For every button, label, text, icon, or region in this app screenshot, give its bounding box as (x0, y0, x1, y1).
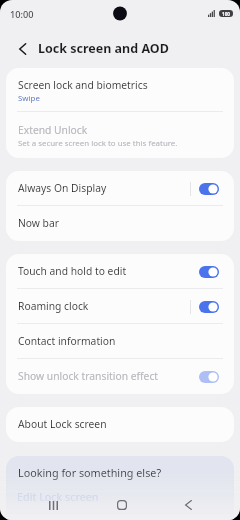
staticText: Looking for something else? (18, 465, 162, 480)
staticText: Roaming clock (18, 299, 89, 313)
staticText: Show unlock transition effect (18, 369, 159, 383)
staticText: Set a secure screen lock to use this fea… (18, 138, 178, 149)
staticText: Touch and hold to edit (18, 264, 127, 278)
button[interactable]: Now bar (6, 206, 234, 241)
staticText: Always On Display (18, 181, 107, 195)
staticText: Extend Unlock (18, 123, 88, 137)
button[interactable]: Touch and hold to edit (6, 254, 190, 289)
button[interactable]: Back (176, 493, 200, 517)
staticText: 100 (222, 11, 230, 17)
button[interactable]: Home (110, 493, 134, 517)
staticText: 10:00 (10, 8, 34, 21)
button[interactable]: Roaming clock (6, 289, 190, 324)
staticText: Now bar (18, 216, 59, 230)
button[interactable]: Show unlock transition effect (6, 359, 190, 394)
button[interactable]: Touch and hold to edit (191, 254, 234, 289)
staticText: Lock screen and AOD (38, 40, 169, 57)
staticText: Contact information (18, 334, 116, 348)
button[interactable]: Recent apps (41, 493, 65, 517)
staticText: Screen lock and biometrics (18, 78, 148, 92)
button[interactable]: Extend Unlock (6, 112, 234, 158)
staticText: About Lock screen (18, 417, 107, 431)
button[interactable]: Edit Lock screen (17, 489, 99, 504)
button[interactable]: Screen lock and biometrics (6, 68, 234, 112)
button[interactable]: Always On Display (6, 171, 190, 206)
staticText: Swipe (18, 93, 40, 104)
button[interactable]: Always On Display (191, 171, 234, 206)
button[interactable]: Show unlock transition effect (191, 359, 234, 394)
button[interactable]: About Lock screen (6, 407, 234, 442)
button[interactable]: Back (10, 37, 34, 61)
button[interactable]: Contact information (6, 324, 234, 359)
button[interactable]: Roaming clock (191, 289, 234, 324)
